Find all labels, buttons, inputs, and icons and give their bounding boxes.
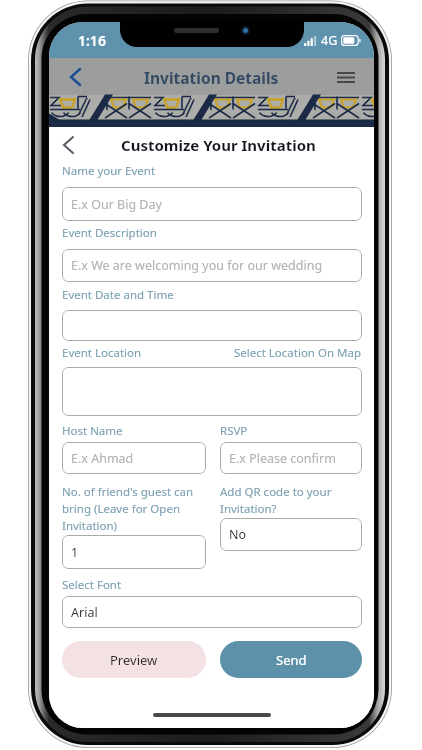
staticText: Event Date and Time xyxy=(62,287,174,303)
staticText: Select Font xyxy=(62,577,122,593)
staticText: Invitation Details xyxy=(144,67,279,88)
staticText: Send xyxy=(276,651,307,669)
staticText: RSVP xyxy=(220,423,248,439)
staticText: Event Description xyxy=(62,225,157,241)
button[interactable]: Preview xyxy=(62,641,206,678)
staticText: Event Location xyxy=(62,345,142,361)
button[interactable]: Back xyxy=(60,62,90,92)
staticText: No. of friend's guest can bring (Leave f… xyxy=(62,484,206,534)
button[interactable] xyxy=(62,367,362,416)
staticText: E.x Ahmad xyxy=(71,450,134,467)
button[interactable]: Back xyxy=(52,129,84,161)
staticText: Add QR code to your Invitation? xyxy=(220,484,362,517)
staticText: 1 xyxy=(71,544,79,561)
staticText: Preview xyxy=(110,651,158,669)
staticText: 1:16 xyxy=(78,31,106,50)
button[interactable]: Arial xyxy=(62,596,362,628)
button[interactable]: E.x Our Big Day xyxy=(62,187,362,221)
button[interactable]: E.x We are welcoming you for our wedding xyxy=(62,249,362,282)
staticText: Arial xyxy=(71,604,98,621)
button[interactable]: No xyxy=(220,518,362,551)
staticText: Host Name xyxy=(62,423,123,439)
button[interactable]: Send xyxy=(220,641,362,678)
button[interactable]: 1 xyxy=(62,535,206,569)
button[interactable]: E.x Ahmad xyxy=(62,442,206,474)
staticText: E.x Please confirm xyxy=(229,450,336,467)
button[interactable]: Menu xyxy=(331,62,361,92)
staticText: 4G xyxy=(321,32,338,49)
staticText: Customize Your Invitation xyxy=(121,135,316,155)
button[interactable] xyxy=(62,310,362,341)
staticText: Name your Event xyxy=(62,163,156,179)
staticText: E.x Our Big Day xyxy=(71,196,162,213)
staticText: Select Location On Map xyxy=(229,345,361,361)
button[interactable]: E.x Please confirm xyxy=(220,442,362,474)
staticText: No xyxy=(229,526,247,543)
staticText: E.x We are welcoming you for our wedding xyxy=(71,257,323,274)
